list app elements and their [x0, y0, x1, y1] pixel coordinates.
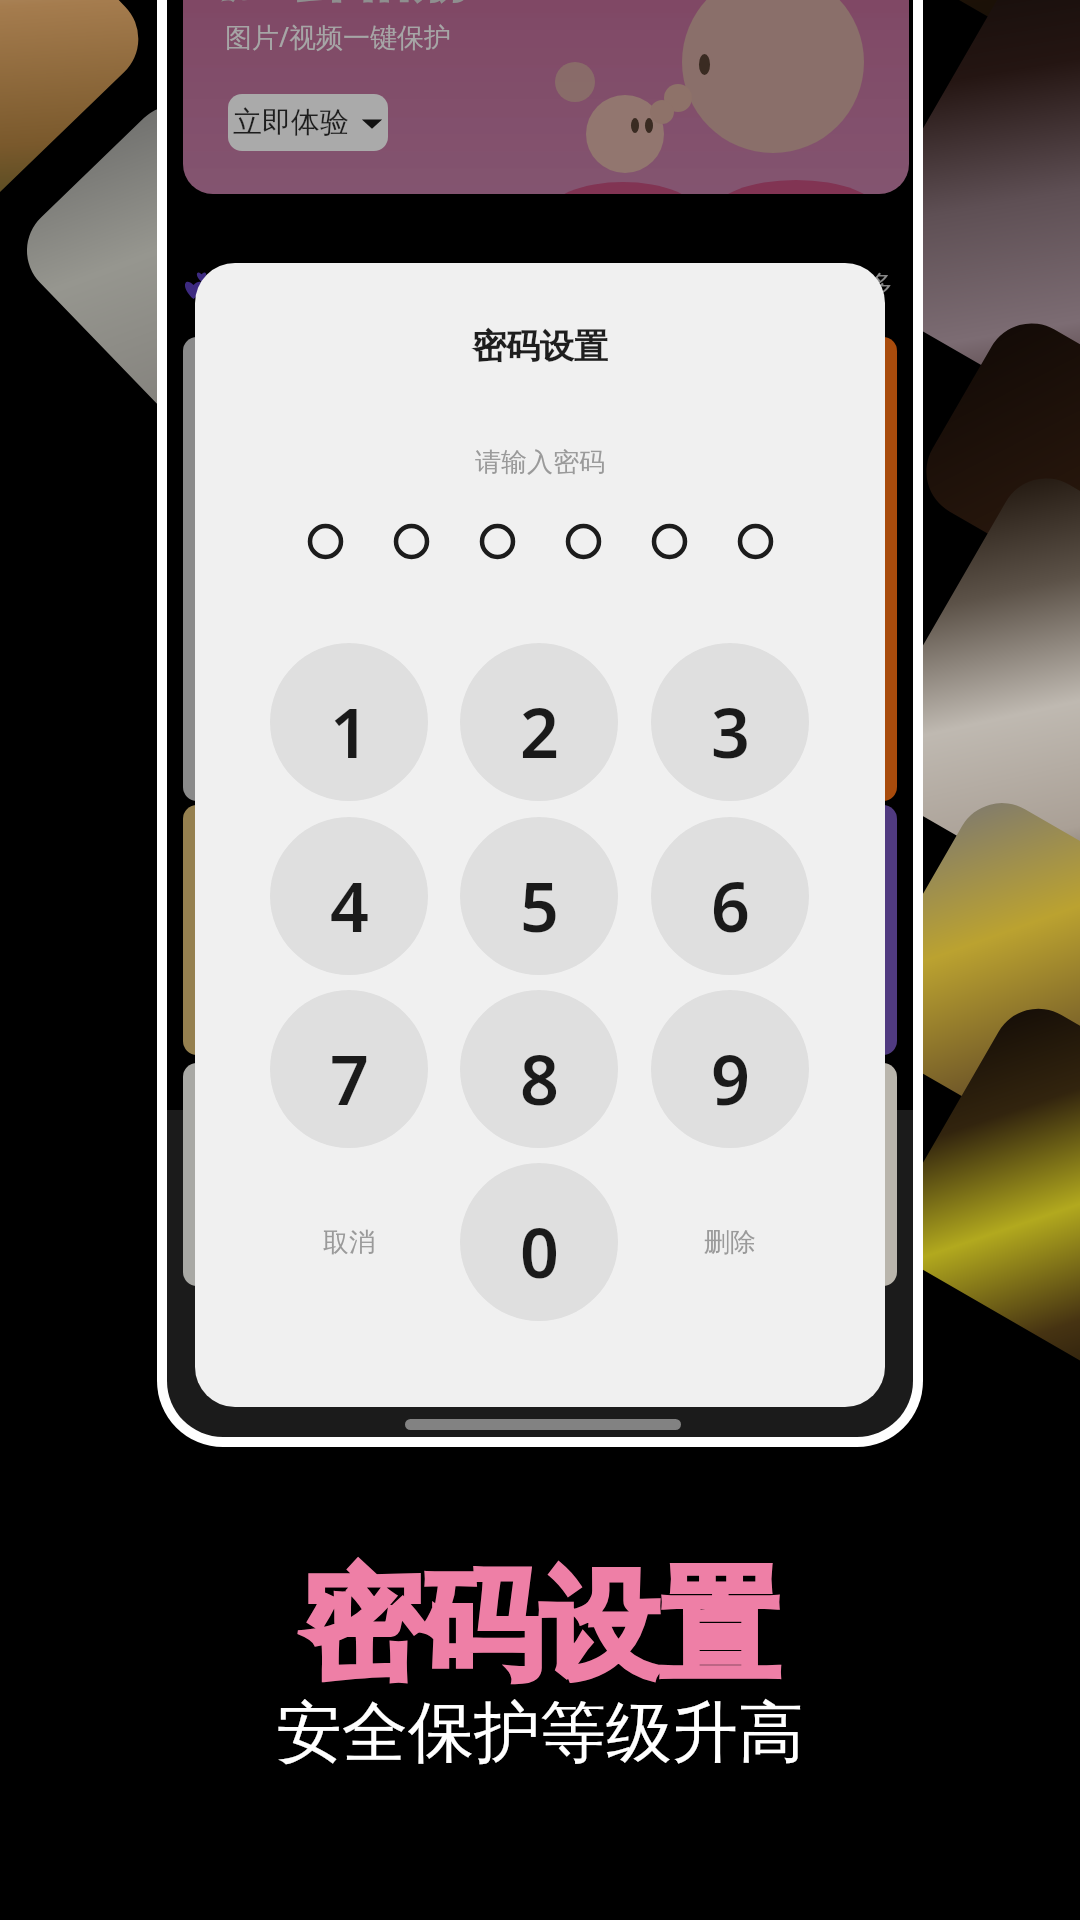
staticText: 2	[520, 685, 559, 778]
button[interactable]: Album photo	[545, 805, 897, 1055]
staticText: 3	[711, 685, 750, 778]
button[interactable]: Album photo	[183, 805, 530, 1055]
staticText: 8	[520, 1032, 559, 1125]
button[interactable]: Album photo	[183, 337, 530, 801]
button[interactable]: Album photo	[183, 1063, 530, 1286]
staticText: 图片/视频一键保护	[225, 18, 452, 55]
staticText: 9	[711, 1032, 750, 1125]
staticText: 0	[520, 1205, 559, 1298]
button[interactable]: 删除	[665, 1199, 795, 1285]
button[interactable]: 1	[270, 643, 428, 801]
button[interactable]: 2	[460, 643, 618, 801]
staticText: 4	[330, 859, 369, 952]
button[interactable]: Album photo	[545, 1063, 897, 1286]
button[interactable]: 3	[651, 643, 809, 801]
staticText: 7	[330, 1032, 369, 1125]
staticText: 安全保护等级升高	[0, 1691, 1080, 1774]
staticText: 立即体验	[233, 104, 349, 141]
button[interactable]: 5	[460, 817, 618, 975]
staticText: 密码设置	[195, 325, 885, 368]
staticText: 更多	[843, 269, 893, 300]
button[interactable]: 7	[270, 990, 428, 1148]
button[interactable]: 更多	[831, 262, 905, 306]
button[interactable]: 0	[460, 1163, 618, 1321]
button[interactable]: 立即体验	[228, 94, 388, 151]
staticText: 1	[330, 685, 369, 778]
button[interactable]: 9	[651, 990, 809, 1148]
staticText: 删除	[704, 1226, 756, 1259]
staticText: 取消	[323, 1226, 375, 1259]
button[interactable]: 取消	[284, 1199, 414, 1285]
staticText: 5	[520, 859, 559, 952]
staticText: 加密相册	[225, 0, 473, 12]
staticText: 请输入密码	[195, 446, 885, 479]
button[interactable]: 8	[460, 990, 618, 1148]
button[interactable]: 6	[651, 817, 809, 975]
staticText: 6	[711, 859, 750, 952]
staticText: 密码设置	[0, 1551, 1080, 1702]
button[interactable]: Album photo	[545, 337, 897, 801]
button[interactable]: 4	[270, 817, 428, 975]
